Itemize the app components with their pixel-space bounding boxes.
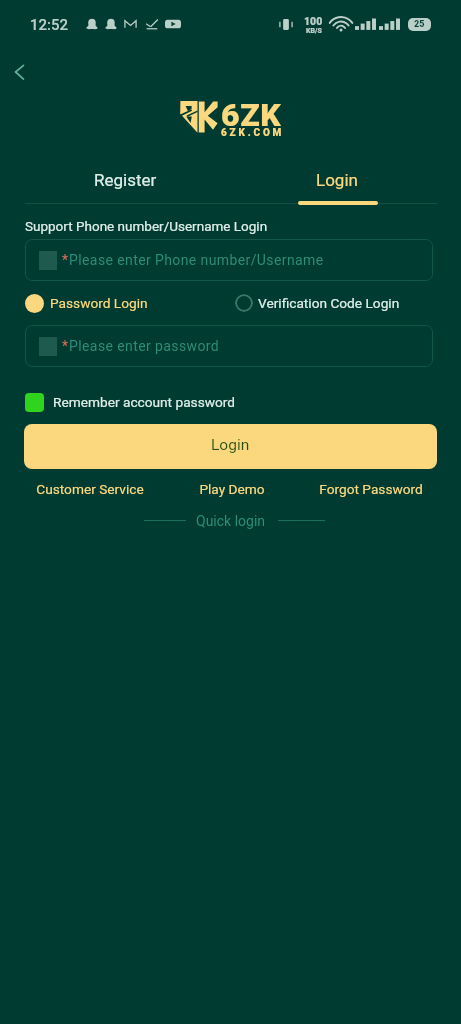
staticText: Forgot Password (319, 481, 423, 497)
button[interactable]: Verification Code Login (235, 293, 400, 313)
button[interactable]: * (25, 325, 433, 367)
staticText: Play Demo (199, 481, 265, 497)
button[interactable]: Register (25, 162, 226, 198)
staticText: * (62, 338, 69, 354)
button[interactable]: Remember account password (25, 392, 236, 412)
button[interactable]: Customer Service (36, 479, 144, 499)
staticText: Support Phone number/Username Login (25, 218, 268, 234)
button[interactable]: Quick login (190, 510, 272, 532)
staticText: Login (211, 436, 250, 454)
staticText: 12:52 (30, 16, 69, 34)
staticText: Verification Code Login (258, 295, 400, 311)
staticText: Register (94, 170, 157, 190)
button[interactable]: Login (236, 162, 437, 198)
button[interactable]: Login (24, 424, 437, 469)
staticText: 25 (414, 19, 425, 30)
staticText: Please enter password (69, 338, 220, 354)
button[interactable]: * (25, 239, 433, 281)
staticText: 6ZK (221, 96, 282, 132)
staticText: Password Login (50, 295, 148, 311)
button[interactable]: Forgot Password (319, 479, 423, 499)
staticText: * (62, 252, 69, 268)
button[interactable]: Play Demo (199, 479, 265, 499)
staticText: Please enter Phone number/Username (69, 252, 324, 268)
staticText: Remember account password (53, 394, 236, 410)
staticText: Quick login (196, 513, 266, 529)
staticText: 6ZK.COM (221, 127, 285, 139)
staticText: Customer Service (36, 481, 144, 497)
staticText: 100 (304, 15, 323, 27)
staticText: Login (316, 170, 358, 190)
button[interactable]: Password Login (25, 293, 148, 313)
button[interactable]: Back (3, 55, 37, 89)
staticText: KB/S (306, 27, 322, 35)
